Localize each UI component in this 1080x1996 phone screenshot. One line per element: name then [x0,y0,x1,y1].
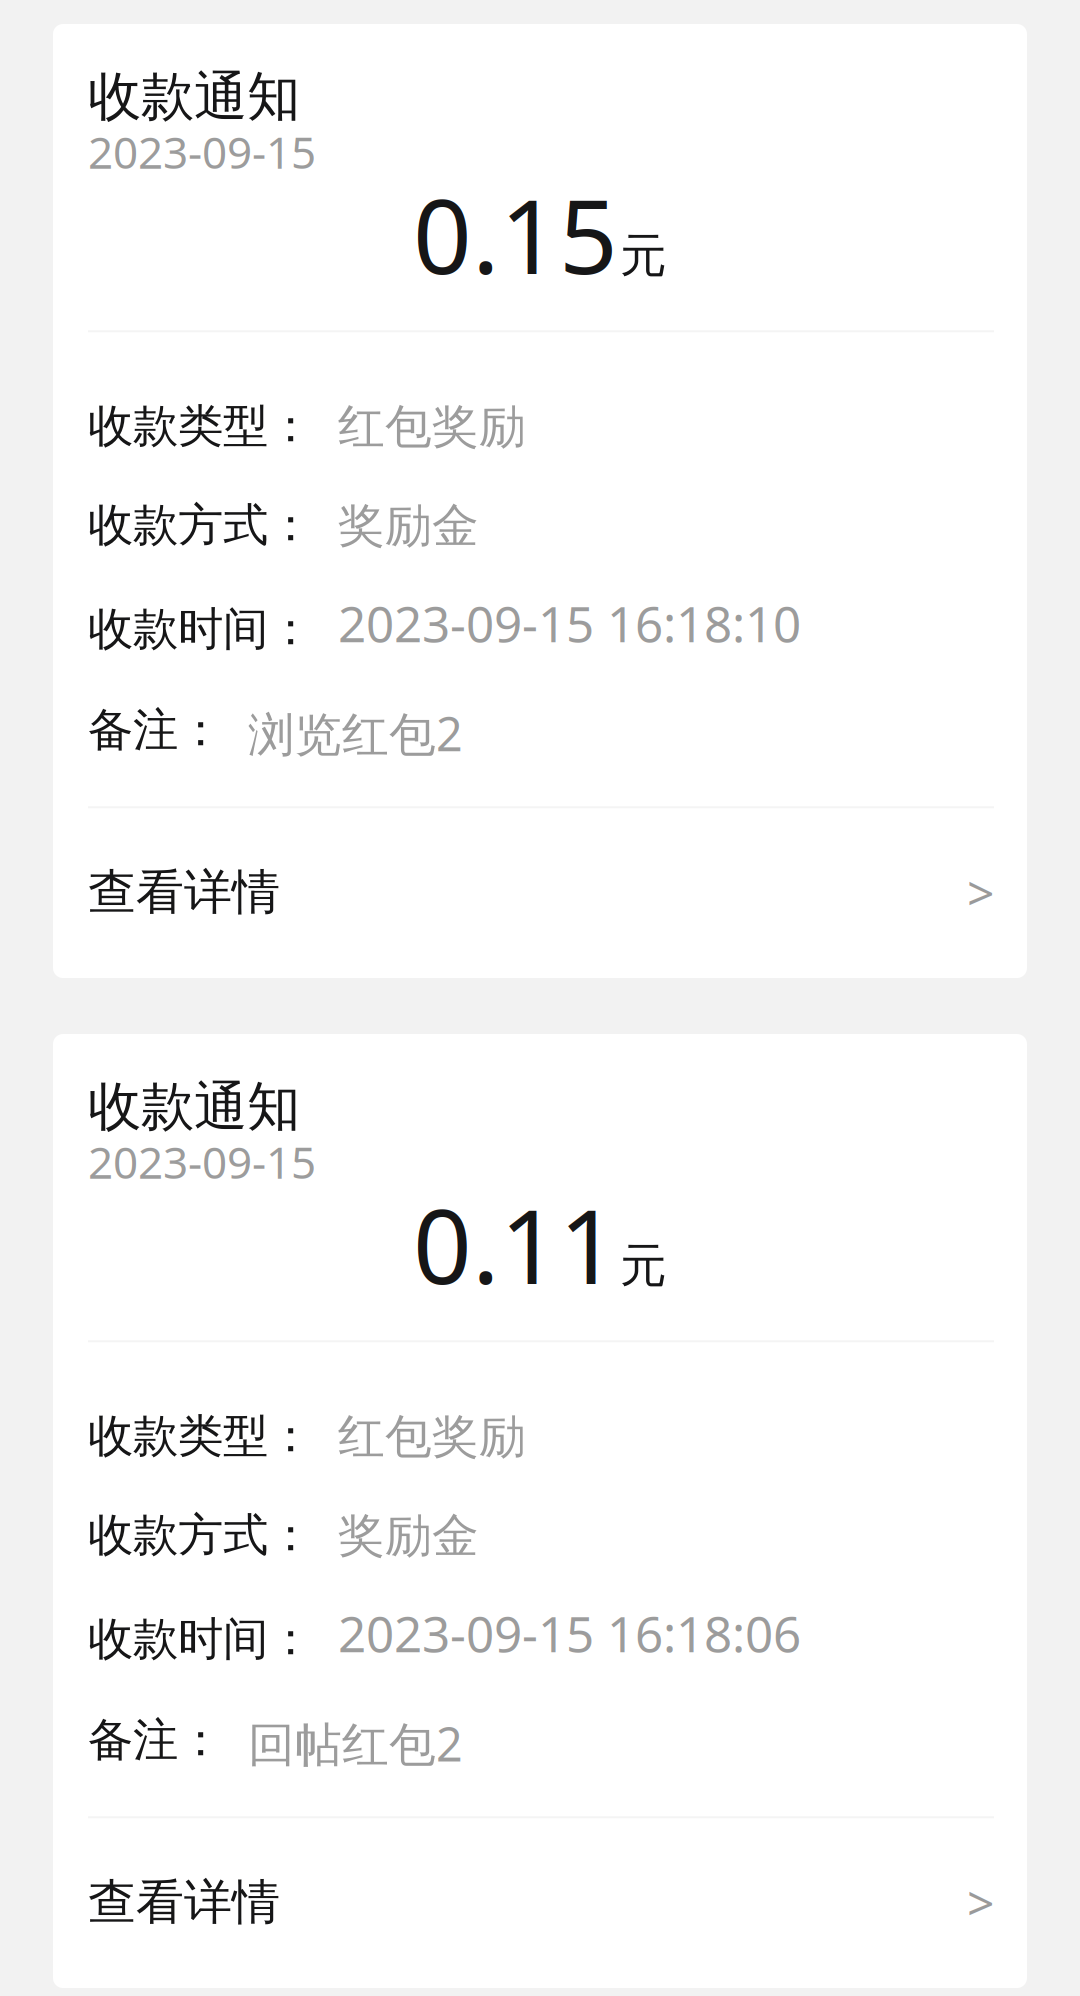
staticText: 0.11 [413,1176,618,1312]
staticText: 收款通知 [88,64,300,129]
staticText: 查看详情 [88,1873,280,1932]
staticText: 收款通知 [88,1074,300,1139]
staticText: 收款类型： [88,398,313,454]
staticText: 收款方式： [88,1507,313,1563]
staticText: 备注： [88,1712,223,1768]
staticText: 回帖红包2 [248,1712,463,1774]
staticText: 收款方式： [88,497,313,553]
staticText: 浏览红包2 [248,702,463,764]
staticText: 0.15 [413,166,618,302]
button[interactable]: 查看详情 [53,808,1027,978]
staticText: 红包奖励 [338,1408,526,1466]
staticText: 收款时间： [88,1611,313,1667]
staticText: 查看详情 [88,863,280,922]
staticText: 元 [620,1237,667,1294]
staticText: 奖励金 [338,1507,479,1565]
staticText: 收款时间： [88,601,313,657]
staticText: 2023-09-15 16:18:10 [338,590,801,656]
staticText: 奖励金 [338,497,479,555]
staticText: 2023-09-15 [88,1132,316,1191]
staticText: 元 [620,227,667,284]
staticText: 收款类型： [88,1408,313,1464]
button[interactable]: 查看详情 [53,1818,1027,1988]
staticText: > [967,860,994,924]
staticText: 2023-09-15 [88,122,316,181]
staticText: > [967,1870,994,1934]
staticText: 备注： [88,702,223,758]
staticText: 红包奖励 [338,398,526,456]
staticText: 2023-09-15 16:18:06 [338,1600,801,1666]
